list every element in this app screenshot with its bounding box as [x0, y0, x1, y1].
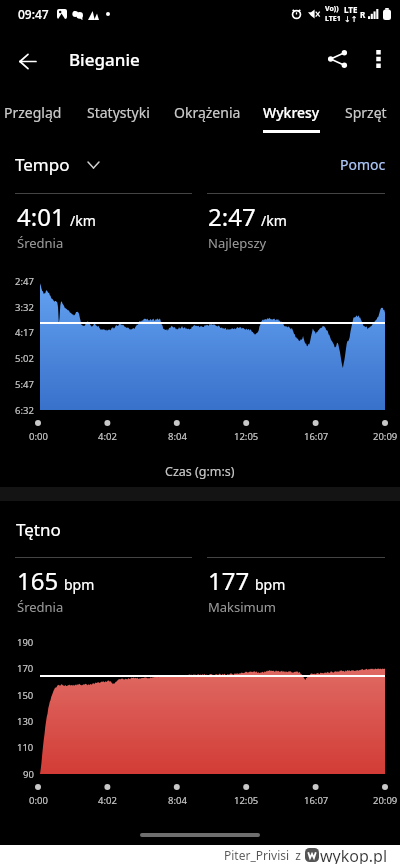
- staticText: Vo)): [325, 4, 339, 14]
- staticText: 16:07: [304, 430, 329, 443]
- button[interactable]: Pomoc: [340, 155, 386, 174]
- staticText: Tętno: [16, 518, 61, 541]
- staticText: 110: [17, 741, 34, 754]
- staticText: bpm: [64, 575, 95, 594]
- staticText: 190: [17, 636, 34, 649]
- staticText: LTE: [344, 4, 358, 15]
- staticText: 6:32: [15, 404, 34, 417]
- staticText: 0:00: [29, 430, 48, 443]
- staticText: Tempo: [15, 153, 70, 176]
- staticText: 8:04: [168, 430, 187, 443]
- staticText: 16:07: [304, 794, 329, 807]
- staticText: 3:32: [15, 301, 34, 314]
- button[interactable]: Wykresy: [252, 90, 330, 134]
- staticText: Przegląd: [4, 103, 62, 122]
- staticText: Maksimum: [208, 598, 276, 616]
- staticText: 4:02: [98, 794, 117, 807]
- staticText: 8:04: [168, 794, 187, 807]
- staticText: 20:09: [373, 430, 398, 443]
- staticText: Statystyki: [87, 103, 150, 122]
- button[interactable]: Tempo: [15, 153, 99, 176]
- staticText: 130: [17, 715, 34, 728]
- staticText: 150: [17, 689, 34, 702]
- staticText: /km: [261, 211, 287, 230]
- staticText: Sprzęt: [345, 103, 387, 122]
- button[interactable]: Share: [313, 35, 361, 83]
- staticText: 4:01: [17, 200, 65, 233]
- staticText: Czas (g:m:s): [165, 463, 235, 480]
- staticText: 5:02: [15, 352, 34, 365]
- staticText: 12:05: [234, 430, 259, 443]
- staticText: 0:00: [29, 794, 48, 807]
- staticText: 4:02: [98, 430, 117, 443]
- staticText: Okrążenia: [174, 103, 241, 122]
- staticText: 2:47: [15, 275, 34, 288]
- staticText: 90: [23, 768, 34, 781]
- staticText: Najlepszy: [208, 234, 267, 252]
- staticText: Wykresy: [263, 103, 320, 122]
- staticText: Średnia: [17, 598, 64, 616]
- staticText: bpm: [255, 575, 286, 594]
- staticText: 2:47: [208, 200, 256, 233]
- staticText: Piter_Privisi z: [224, 847, 301, 863]
- button[interactable]: Sprzęt: [334, 90, 398, 134]
- staticText: Bieganie: [69, 48, 140, 71]
- button[interactable]: Statystyki: [74, 90, 162, 134]
- button[interactable]: More options: [356, 37, 400, 81]
- staticText: Średnia: [17, 234, 64, 252]
- button[interactable]: Przegląd: [0, 90, 73, 134]
- staticText: 170: [17, 662, 34, 675]
- button[interactable]: Okrążenia: [162, 90, 252, 134]
- staticText: Pomoc: [340, 155, 386, 174]
- staticText: LTE1: [325, 14, 341, 24]
- staticText: 165: [17, 564, 59, 597]
- staticText: 12:05: [234, 794, 259, 807]
- staticText: 09:47: [18, 6, 49, 22]
- staticText: 177: [208, 564, 250, 597]
- staticText: 20:09: [373, 794, 398, 807]
- staticText: wykop.pl: [320, 845, 388, 864]
- staticText: /km: [70, 211, 96, 230]
- staticText: ↓↑: [344, 15, 358, 24]
- staticText: 4:17: [15, 326, 34, 339]
- staticText: R: [360, 9, 366, 20]
- button[interactable]: Tętno: [16, 518, 61, 541]
- button[interactable]: Back: [5, 37, 49, 81]
- staticText: 5:47: [15, 378, 34, 391]
